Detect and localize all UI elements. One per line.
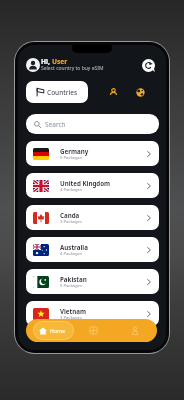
staticText: Select country to buy eSIM: [41, 65, 104, 72]
button[interactable]: Account: [127, 319, 142, 342]
button[interactable]: Search: [26, 114, 159, 134]
button[interactable]: Support chat: [142, 59, 155, 72]
staticText: 3 Packages: [60, 219, 82, 225]
button[interactable]: Pakistan: [26, 269, 159, 294]
button[interactable]: Canda: [26, 205, 159, 230]
button[interactable]: Language: [132, 84, 148, 100]
staticText: Hi,: [41, 57, 52, 66]
staticText: Countries: [47, 88, 78, 97]
button[interactable]: United Kingdom: [26, 173, 159, 198]
staticText: 4 Packages: [60, 251, 82, 257]
button[interactable]: Australia: [26, 237, 159, 262]
staticText: User: [52, 57, 68, 66]
staticText: Canda: [60, 211, 80, 219]
button[interactable]: Countries: [26, 81, 88, 103]
staticText: Australia: [60, 243, 88, 251]
staticText: United Kingdom: [60, 179, 111, 187]
staticText: Germany: [60, 147, 89, 155]
staticText: Pakistan: [60, 275, 87, 283]
button[interactable]: Profile: [105, 84, 121, 100]
button[interactable]: Home: [33, 321, 74, 340]
button[interactable]: Packages: [86, 319, 101, 342]
staticText: 4 Packages: [60, 187, 82, 193]
staticText: 3 Packages: [60, 315, 82, 321]
staticText: Vietnam: [60, 307, 87, 315]
button[interactable]: Vietnam: [26, 301, 159, 326]
staticText: 5 Packages: [60, 283, 82, 289]
staticText: Search: [45, 120, 66, 129]
button[interactable]: Germany: [26, 141, 159, 166]
staticText: Home: [50, 327, 65, 334]
staticText: 5 Packages: [60, 155, 82, 161]
